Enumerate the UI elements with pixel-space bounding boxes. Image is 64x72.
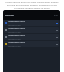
staticText: Secondary text [8,24,21,26]
staticText: Settings [5,14,14,17]
staticText: elit sed do eiusmod tempor incididunt ut… [1,3,63,6]
button[interactable]: Notification name [4,27,59,33]
staticText: et dolore magna aliqua ut enim [1,6,63,9]
staticText: Notification name [8,27,25,30]
staticText: Secondary text [8,31,21,33]
button[interactable]: Notification name [4,34,59,40]
staticText: Notification name [8,20,25,23]
staticText: Notification name [8,34,25,37]
button[interactable]: Notification name [4,20,59,26]
staticText: Notification name [8,41,25,44]
staticText: Lorem ipsum dolor sit amet consectetur a… [1,0,63,3]
staticText: Secondary text [8,45,21,47]
staticText: Secondary text [8,38,21,40]
button[interactable]: Notification name [4,41,59,47]
staticText: Edit [54,14,58,17]
